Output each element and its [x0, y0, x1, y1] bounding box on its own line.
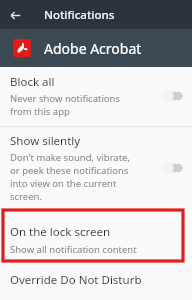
- button[interactable]: Show silently: [0, 127, 192, 210]
- staticText: Never show notifications: [10, 92, 121, 105]
- staticText: from this app: [10, 105, 70, 118]
- button[interactable]: Back: [4, 4, 26, 26]
- button[interactable]: Adobe Acrobat: [0, 29, 192, 67]
- staticText: Override Do Not Disturb: [10, 272, 142, 288]
- staticText: On the lock screen: [10, 224, 111, 240]
- staticText: screen.: [10, 190, 42, 203]
- button[interactable]: On the lock screen: [0, 210, 192, 256]
- button[interactable]: Block all: [0, 67, 192, 126]
- staticText: Show silently: [10, 133, 81, 149]
- staticText: into view on the current: [10, 177, 117, 190]
- button[interactable]: Toggle: [160, 88, 184, 104]
- button[interactable]: Toggle: [160, 160, 184, 176]
- staticText: Don't make sound, vibrate,: [10, 151, 131, 164]
- staticText: Show all notification content: [10, 243, 137, 256]
- staticText: Notifications: [44, 7, 115, 23]
- staticText: or peek these notifications: [10, 164, 129, 177]
- staticText: Block all: [10, 74, 55, 90]
- button[interactable]: Override Do Not Disturb: [0, 262, 192, 292]
- staticText: Adobe Acrobat: [44, 39, 142, 58]
